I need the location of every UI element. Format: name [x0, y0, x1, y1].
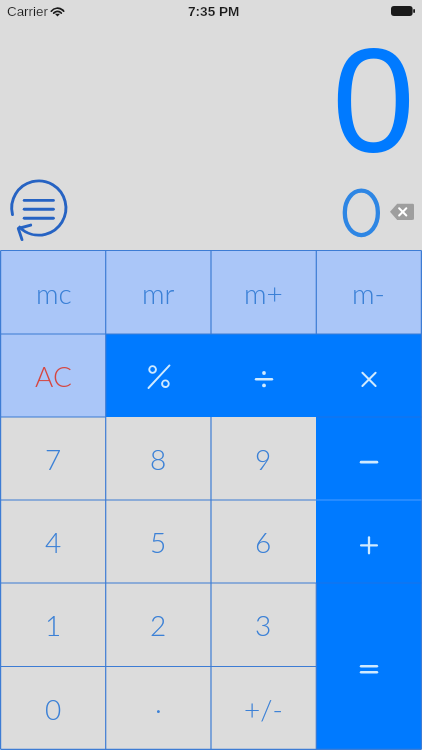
staticText: m-: [352, 276, 385, 310]
button[interactable]: 2: [106, 583, 211, 667]
staticText: 9: [255, 442, 272, 476]
button[interactable]: 9: [211, 417, 316, 500]
button[interactable]: 5: [106, 500, 211, 583]
button[interactable]: Minus: [316, 417, 421, 500]
button[interactable]: m+: [211, 251, 316, 335]
button[interactable]: mc: [1, 251, 106, 335]
button[interactable]: 7: [1, 417, 106, 500]
button[interactable]: +/-: [211, 667, 316, 750]
staticText: m+: [244, 276, 283, 310]
staticText: +/-: [244, 692, 283, 726]
staticText: 7:35 PM: [188, 4, 240, 19]
staticText: AC: [35, 359, 72, 393]
button[interactable]: Backspace: [390, 202, 414, 222]
button[interactable]: mr: [106, 251, 211, 335]
staticText: 8: [150, 442, 167, 476]
button[interactable]: Percent: [106, 334, 211, 417]
button[interactable]: m-: [316, 251, 421, 335]
button[interactable]: Divide: [211, 334, 316, 417]
staticText: ·: [155, 692, 162, 726]
button[interactable]: History: [9, 178, 69, 238]
staticText: 2: [150, 608, 167, 642]
staticText: 7: [45, 442, 62, 476]
button[interactable]: Multiply: [316, 334, 421, 417]
staticText: mc: [36, 276, 72, 310]
button[interactable]: 3: [211, 583, 316, 667]
staticText: 0: [45, 692, 62, 726]
staticText: 3: [255, 608, 272, 642]
staticText: 5: [150, 525, 167, 559]
staticText: mr: [142, 276, 175, 310]
staticText: Carrier: [7, 4, 48, 19]
button[interactable]: Plus: [316, 500, 421, 583]
staticText: 4: [45, 525, 62, 559]
staticText: 1: [45, 608, 62, 642]
staticText: 0: [332, 17, 415, 183]
button[interactable]: AC: [1, 334, 106, 417]
button[interactable]: ·: [106, 667, 211, 750]
button[interactable]: 8: [106, 417, 211, 500]
button[interactable]: 6: [211, 500, 316, 583]
button[interactable]: 0: [1, 667, 106, 750]
staticText: 6: [255, 525, 272, 559]
button[interactable]: Equals: [316, 583, 421, 749]
button[interactable]: 1: [1, 583, 106, 667]
button[interactable]: 4: [1, 500, 106, 583]
